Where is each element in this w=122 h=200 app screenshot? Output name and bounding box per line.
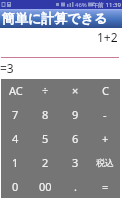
staticText: ÷ — [42, 83, 49, 98]
staticText: 00 — [39, 179, 52, 194]
staticText: 6 — [72, 131, 79, 146]
button[interactable]: × — [60, 79, 90, 102]
staticText: 5 — [42, 131, 49, 146]
button[interactable]: = — [90, 174, 120, 198]
staticText: 1 — [12, 155, 19, 170]
staticText: 7 — [12, 107, 19, 122]
staticText: 1+2 — [97, 29, 118, 45]
staticText: = — [102, 179, 109, 194]
staticText: 9 — [72, 107, 79, 122]
staticText: 2 — [42, 155, 49, 170]
button[interactable]: 0 — [1, 174, 30, 198]
button[interactable]: C — [90, 79, 120, 102]
button[interactable]: 2 — [30, 150, 60, 174]
button[interactable]: 3 — [60, 150, 90, 174]
staticText: . — [74, 179, 77, 194]
staticText: + — [102, 131, 109, 146]
staticText: 3 — [72, 155, 79, 170]
button[interactable]: 00 — [30, 174, 60, 198]
staticText: × — [72, 83, 79, 98]
button[interactable]: 9 — [60, 102, 90, 126]
staticText: 8 — [42, 107, 49, 122]
button[interactable]: 税込 — [90, 150, 120, 174]
staticText: 簡単に計算できる — [2, 10, 108, 26]
staticText: 46% — [75, 1, 87, 9]
button[interactable]: 6 — [60, 126, 90, 150]
staticText: 税込 — [96, 157, 114, 168]
staticText: =3 — [0, 60, 14, 76]
button[interactable]: - — [90, 102, 120, 126]
button[interactable]: 5 — [30, 126, 60, 150]
button[interactable]: AC — [1, 79, 30, 102]
button[interactable]: 1 — [1, 150, 30, 174]
staticText: 0 — [12, 179, 19, 194]
staticText: - — [103, 107, 107, 122]
button[interactable]: 7 — [1, 102, 30, 126]
staticText: C — [102, 83, 109, 98]
button[interactable]: ÷ — [30, 79, 60, 102]
button[interactable]: 8 — [30, 102, 60, 126]
button[interactable]: 4 — [1, 126, 30, 150]
staticText: 4 — [12, 131, 19, 146]
button[interactable]: . — [60, 174, 90, 198]
staticText: 午前 11:39 — [92, 1, 121, 9]
staticText: AC — [9, 83, 23, 98]
button[interactable]: + — [90, 126, 120, 150]
